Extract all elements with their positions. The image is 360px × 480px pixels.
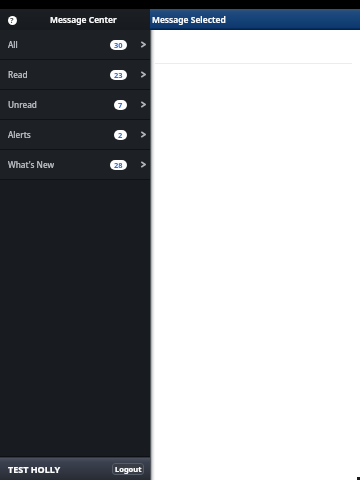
staticText: Read <box>8 69 28 80</box>
staticText: 7 <box>118 100 123 110</box>
button[interactable]: Help <box>4 12 20 28</box>
staticText: Unread <box>8 99 37 110</box>
staticText: What's New <box>8 159 55 170</box>
staticText: Message Center <box>50 14 117 26</box>
button[interactable]: All <box>0 30 150 59</box>
staticText: Message Selected <box>152 14 226 26</box>
staticText: 30 <box>114 40 123 50</box>
staticText: Logout <box>115 464 142 474</box>
staticText: ? <box>10 15 14 25</box>
button[interactable]: Unread <box>0 90 150 119</box>
staticText: 2 <box>118 130 123 140</box>
staticText: Alerts <box>8 129 31 140</box>
staticText: 28 <box>114 160 123 170</box>
button[interactable]: Read <box>0 60 150 89</box>
staticText: All <box>8 39 18 50</box>
staticText: 23 <box>114 70 123 80</box>
button[interactable]: Alerts <box>0 120 150 149</box>
staticText: TEST HOLLY <box>8 463 61 475</box>
button[interactable]: Logout <box>112 463 144 475</box>
button[interactable]: What's New <box>0 150 150 179</box>
